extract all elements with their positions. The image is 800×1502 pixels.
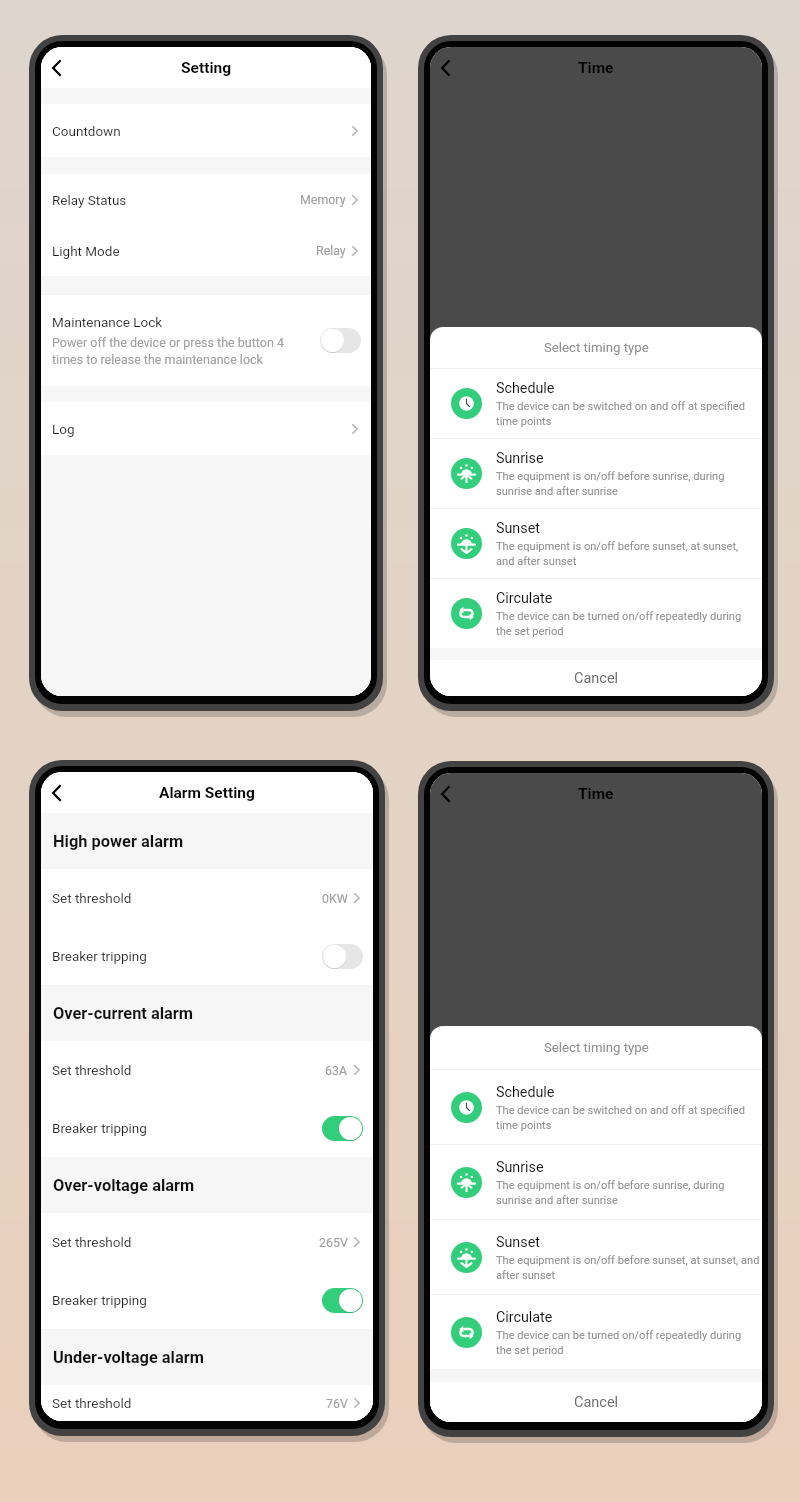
staticText: High power alarm (53, 832, 184, 851)
staticText: Set threshold (52, 890, 132, 906)
staticText: Schedule (496, 380, 555, 397)
button[interactable]: Circulate (430, 579, 762, 648)
button[interactable]: Sunrise (430, 439, 762, 508)
button[interactable]: Maintenance Lock (41, 295, 371, 386)
button[interactable]: Set threshold (41, 1213, 373, 1271)
staticText: The device can be turned on/off repeated… (496, 610, 742, 637)
staticText: Breaker tripping (52, 1292, 147, 1308)
button[interactable]: Set threshold (41, 869, 373, 927)
staticText: Schedule (496, 1084, 555, 1101)
staticText: Light Mode (52, 243, 120, 259)
staticText: Time (578, 785, 614, 803)
button[interactable]: Light Mode (41, 225, 371, 276)
staticText: Set threshold (52, 1234, 132, 1250)
staticText: Sunset (496, 520, 540, 537)
staticText: Breaker tripping (52, 948, 147, 964)
staticText: Circulate (496, 590, 553, 607)
staticText: 0KW (322, 891, 348, 906)
button[interactable]: Breaker tripping (41, 927, 373, 985)
staticText: Relay (316, 243, 346, 258)
button[interactable]: Set threshold (41, 1041, 373, 1099)
staticText: The device can be switched on and off at… (496, 1104, 745, 1131)
staticText: Under-voltage alarm (53, 1348, 204, 1367)
staticText: Countdown (52, 123, 121, 139)
button[interactable]: Cancel (430, 1382, 762, 1422)
button[interactable]: Schedule (430, 369, 762, 438)
staticText: Over-current alarm (53, 1004, 194, 1023)
staticText: Breaker tripping (52, 1120, 147, 1136)
button[interactable]: Breaker tripping (41, 1271, 373, 1329)
staticText: The equipment is on/off before sunrise, … (496, 470, 725, 497)
staticText: The equipment is on/off before sunrise, … (496, 1179, 725, 1206)
staticText: The device can be turned on/off repeated… (496, 1329, 742, 1356)
button[interactable]: Set threshold (41, 1385, 373, 1421)
button[interactable]: Back (41, 53, 71, 83)
button[interactable]: Breaker tripping (41, 1099, 373, 1157)
staticText: 76V (326, 1396, 348, 1411)
staticText: Setting (181, 59, 232, 77)
button[interactable]: Sunset (430, 1220, 762, 1294)
staticText: 265V (319, 1235, 348, 1250)
staticText: Memory (300, 192, 346, 207)
staticText: Sunset (496, 1234, 540, 1251)
staticText: The equipment is on/off before sunset, a… (496, 540, 739, 567)
button[interactable]: Sunset (430, 509, 762, 578)
staticText: Power off the device or press the button… (52, 335, 284, 367)
staticText: Time (578, 59, 614, 77)
staticText: Set threshold (52, 1062, 132, 1078)
staticText: Log (52, 421, 75, 437)
staticText: The device can be switched on and off at… (496, 400, 745, 427)
staticText: Select timing type (544, 1040, 649, 1055)
staticText: 63A (325, 1063, 348, 1078)
button[interactable]: Back (430, 53, 460, 83)
button[interactable]: Log (41, 402, 371, 455)
staticText: Cancel (574, 1394, 619, 1411)
staticText: Select timing type (544, 340, 649, 355)
button[interactable]: Countdown (41, 104, 371, 157)
staticText: Maintenance Lock (52, 314, 163, 330)
staticText: Sunrise (496, 1159, 544, 1176)
staticText: Relay Status (52, 192, 127, 208)
staticText: Circulate (496, 1309, 553, 1326)
staticText: Cancel (574, 670, 619, 687)
button[interactable]: Cancel (430, 660, 762, 696)
staticText: Alarm Setting (159, 784, 255, 802)
button[interactable]: Back (430, 779, 460, 809)
staticText: Over-voltage alarm (53, 1176, 195, 1195)
button[interactable]: Circulate (430, 1295, 762, 1369)
button[interactable]: Relay Status (41, 174, 371, 225)
button[interactable]: Sunrise (430, 1145, 762, 1219)
staticText: Sunrise (496, 450, 544, 467)
button[interactable]: Schedule (430, 1070, 762, 1144)
staticText: The equipment is on/off before sunset, a… (496, 1254, 756, 1281)
staticText: Set threshold (52, 1395, 132, 1411)
button[interactable]: Back (41, 778, 71, 808)
